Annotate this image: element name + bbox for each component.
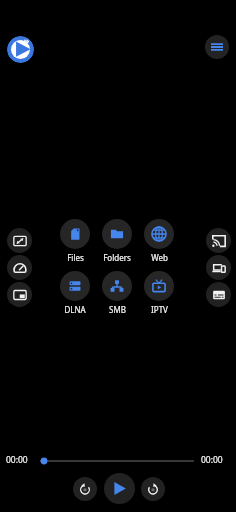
staticText: IPTV — [151, 304, 168, 315]
staticText: Folders — [103, 252, 131, 263]
button[interactable]: IPTV — [138, 271, 180, 317]
button[interactable]: Play — [104, 473, 135, 504]
staticText: Web — [151, 252, 168, 263]
button[interactable]: MX Player — [7, 36, 34, 63]
button[interactable]: Subtitles — [206, 282, 231, 307]
staticText: 00:00 — [201, 454, 223, 466]
staticText: DLNA — [64, 304, 86, 315]
button[interactable]: Web — [138, 219, 180, 265]
staticText: SMB — [109, 304, 126, 315]
button[interactable]: Cast — [206, 228, 231, 253]
staticText: 00:00 — [6, 454, 28, 466]
button[interactable]: Files — [54, 219, 96, 265]
button[interactable]: Picture in picture — [7, 282, 32, 307]
button[interactable]: Folders — [96, 219, 138, 265]
button[interactable]: Connected devices — [206, 255, 231, 280]
button[interactable]: Menu — [205, 35, 229, 59]
button[interactable]: DLNA — [54, 271, 96, 317]
button[interactable]: SMB — [96, 271, 138, 317]
staticText: Files — [67, 252, 84, 263]
button[interactable]: Rewind 10 seconds — [73, 477, 97, 501]
button[interactable]: Playback speed — [7, 255, 32, 280]
button[interactable]: Aspect ratio — [7, 228, 32, 253]
button[interactable]: Forward 10 seconds — [141, 477, 165, 501]
